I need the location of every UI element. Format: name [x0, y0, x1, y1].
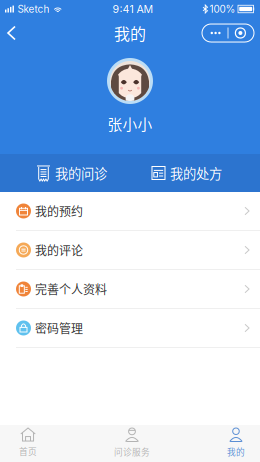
staticText: 我的问诊	[55, 163, 107, 183]
staticText: 张小小	[107, 113, 152, 134]
button[interactable]: 我的评论	[0, 231, 260, 270]
staticText: 问诊服务	[114, 445, 150, 458]
staticText: 首页	[19, 445, 37, 457]
button[interactable]: Back	[0, 18, 23, 47]
staticText: 我的	[114, 21, 146, 45]
button[interactable]: 完善个人资料	[0, 270, 260, 309]
button[interactable]: 问诊服务	[87, 425, 173, 462]
staticText: 100%	[209, 3, 235, 15]
staticText: 密码管理	[35, 319, 83, 337]
button[interactable]: 我的问诊	[0, 154, 130, 192]
staticText: 我的预约	[35, 202, 83, 220]
button[interactable]: 我的处方	[130, 154, 260, 192]
staticText: 完善个人资料	[35, 280, 107, 298]
staticText: 我的评论	[35, 241, 83, 259]
staticText: Sketch	[17, 3, 49, 15]
button[interactable]: 首页	[0, 425, 87, 462]
staticText: 9:41 AM	[112, 2, 153, 15]
button[interactable]: 我的	[173, 425, 260, 462]
button[interactable]: More	[202, 24, 260, 42]
button[interactable]: 我的预约	[0, 192, 260, 231]
staticText: 我的	[227, 445, 245, 458]
button[interactable]: 密码管理	[0, 309, 260, 348]
staticText: 我的处方	[170, 163, 222, 183]
